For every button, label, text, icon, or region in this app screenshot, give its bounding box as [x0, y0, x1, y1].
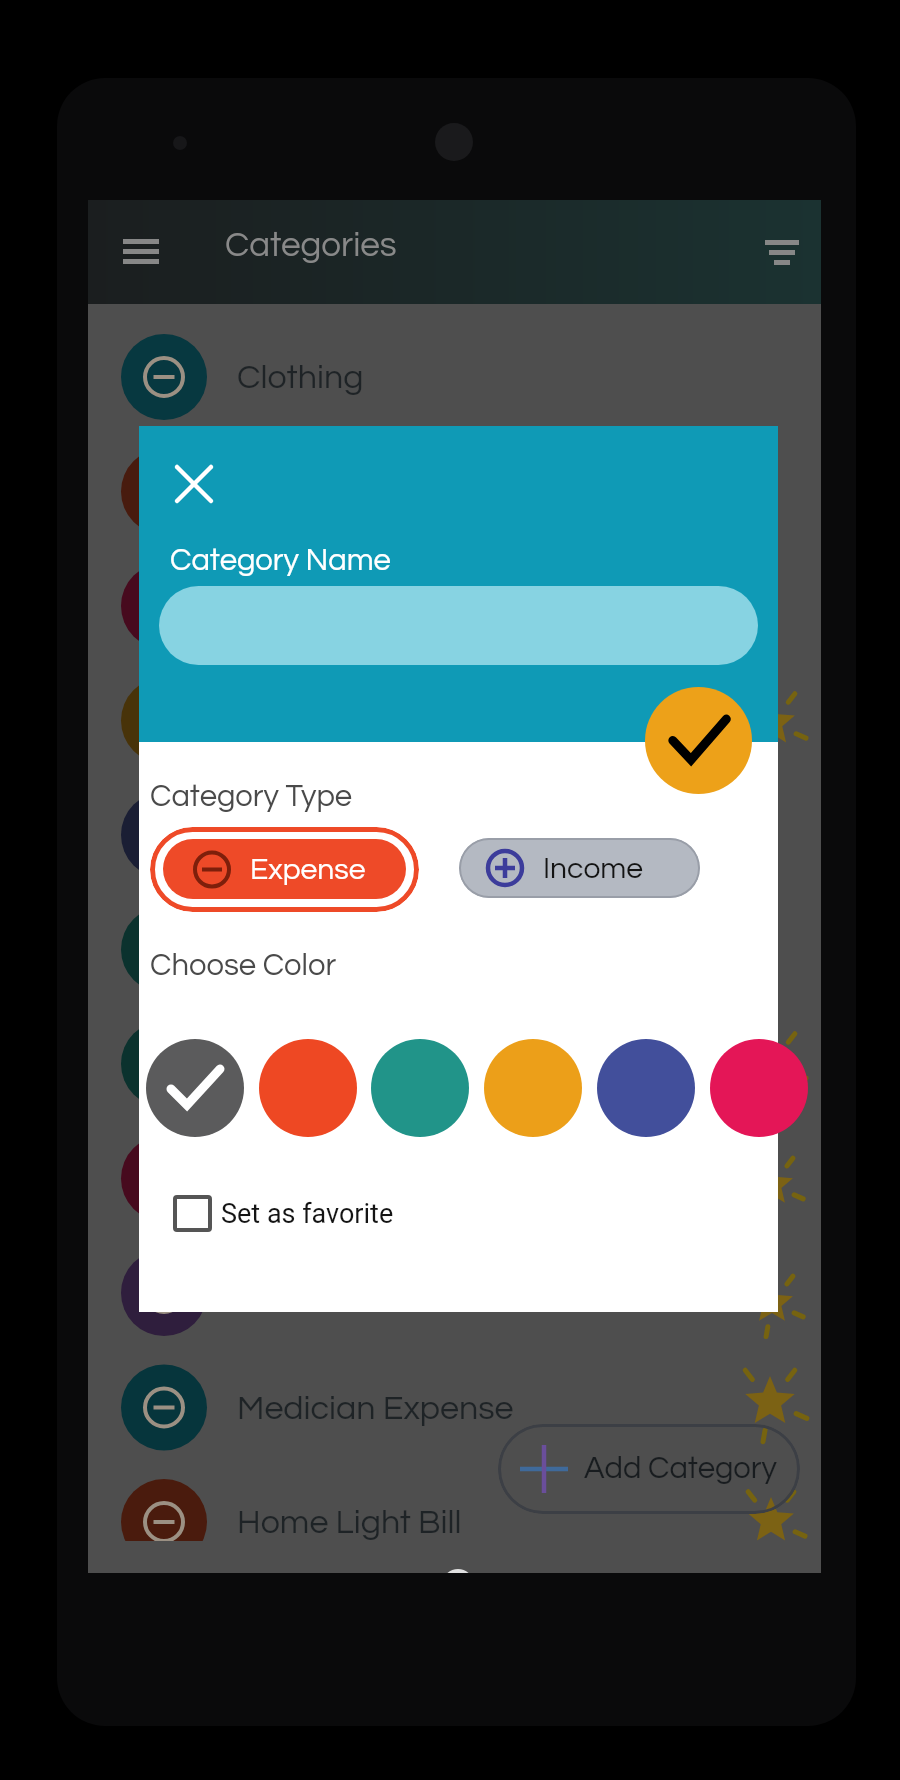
- staticText: Income: [543, 853, 644, 884]
- staticText: Set as favorite: [221, 1198, 394, 1230]
- button[interactable]: Filter: [733, 218, 801, 286]
- staticText: Choose Color: [150, 950, 337, 982]
- button[interactable]: Expense: [150, 827, 419, 912]
- staticText: Medician Expense: [237, 1391, 514, 1426]
- staticText: Categories: [225, 227, 397, 263]
- button[interactable]: Income: [459, 838, 700, 898]
- button[interactable]: Category name input: [159, 586, 758, 665]
- staticText: Expense: [250, 854, 366, 885]
- staticText: Category Name: [170, 545, 391, 577]
- staticText: Clothing: [237, 360, 364, 395]
- staticText: Add Category: [584, 1453, 777, 1485]
- staticText: Category Type: [150, 781, 353, 813]
- button[interactable]: Save category: [645, 687, 752, 794]
- button[interactable]: Close: [161, 451, 227, 517]
- staticText: Home Light Bill: [237, 1505, 462, 1540]
- button[interactable]: Set as favorite: [163, 1186, 394, 1242]
- button[interactable]: Open navigation menu: [103, 218, 171, 286]
- button[interactable]: Add Category: [498, 1424, 800, 1514]
